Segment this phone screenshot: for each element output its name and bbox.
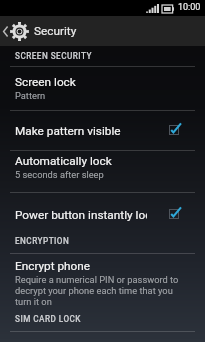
staticText: Require a numerical PIN or password to d… <box>15 274 182 307</box>
other: Checked <box>168 209 182 218</box>
staticText: Security <box>34 24 77 38</box>
staticText: Make pattern visible <box>15 124 147 138</box>
staticText: Power button instantly locks <box>15 208 147 222</box>
button[interactable]: Power button instantly locks <box>0 193 205 236</box>
staticText: SCREEN SECURITY <box>15 51 92 61</box>
staticText: Pattern <box>15 90 46 101</box>
staticText: Automatically lock <box>15 154 112 168</box>
button[interactable]: Navigate up, Security <box>0 16 205 46</box>
staticText: SIM CARD LOCK <box>15 314 81 324</box>
staticText: ENCRYPTION <box>15 236 70 246</box>
button[interactable]: Make pattern visible <box>0 111 205 151</box>
other: Checked <box>168 125 182 134</box>
button[interactable]: Automatically lock <box>0 151 205 193</box>
button[interactable]: Encrypt phone <box>0 254 205 312</box>
staticText: 5 seconds after sleep <box>15 169 104 180</box>
staticText: 10:00 <box>178 2 201 13</box>
staticText: Screen lock <box>15 75 76 89</box>
button[interactable]: Screen lock <box>0 67 205 111</box>
staticText: Encrypt phone <box>15 259 91 273</box>
